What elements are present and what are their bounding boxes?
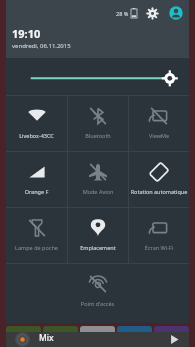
button[interactable]: Emplacement	[68, 208, 128, 263]
staticText: vendredi, 06.11.2015	[12, 42, 71, 50]
button[interactable]: Play	[166, 332, 182, 347]
staticText: ViewMe	[129, 132, 189, 139]
staticText: Mix	[39, 332, 54, 344]
staticText: Point d'accès	[67, 300, 128, 307]
staticText: Bluetooth	[68, 132, 128, 139]
staticText: Lampe de poche	[6, 244, 67, 251]
staticText: Mode Avion	[68, 188, 128, 195]
button[interactable]: Écran Wi-Fi	[129, 208, 189, 263]
button[interactable]: Bluetooth	[68, 96, 128, 151]
button[interactable]: Settings	[146, 7, 159, 20]
staticText: 28 %	[116, 10, 129, 17]
button[interactable]: Orange F	[6, 152, 67, 207]
button[interactable]: Mix	[6, 332, 189, 347]
staticText: Livebox-43CC	[6, 132, 67, 139]
button[interactable]: Mode Avion	[68, 152, 128, 207]
staticText: Emplacement	[68, 244, 128, 251]
button[interactable]: Lampe de poche	[6, 208, 67, 263]
button[interactable]: Livebox-43CC	[6, 96, 67, 151]
staticText: 19:10	[12, 26, 41, 41]
staticText: Écran Wi-Fi	[129, 244, 189, 251]
button[interactable]: Point d'accès	[67, 264, 128, 319]
staticText: Orange F	[6, 188, 67, 195]
staticText: Rotation automatique	[129, 188, 189, 195]
button[interactable]: User profile	[169, 6, 183, 20]
button[interactable]: Rotation automatique	[129, 152, 189, 207]
button[interactable]: ViewMe	[129, 96, 189, 151]
